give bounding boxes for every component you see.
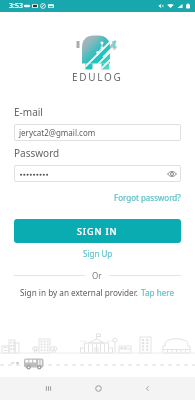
button[interactable]: Tap here (141, 287, 175, 298)
button[interactable]: Forgot password? (114, 192, 181, 203)
staticText: 3:53 (9, 1, 23, 11)
button[interactable]: jerycat2@gmail.com (14, 124, 181, 141)
button[interactable]: Home (81, 377, 115, 400)
button[interactable]: Show password (14, 165, 181, 182)
button[interactable]: Back (130, 377, 164, 400)
staticText: EDULOG (72, 70, 123, 84)
staticText: Tap here (141, 287, 175, 298)
button[interactable]: SIGN IN (14, 219, 181, 243)
staticText: E-mail (14, 105, 43, 119)
button[interactable]: Recent apps (31, 377, 65, 400)
staticText: Password (14, 146, 60, 160)
staticText: Or (92, 270, 102, 281)
staticText: Sign in by an external provider. (20, 287, 141, 298)
staticText: Forgot password? (114, 192, 181, 203)
staticText: Sign Up (83, 248, 113, 259)
button[interactable]: Show password (165, 167, 178, 180)
button[interactable]: Sign Up (83, 248, 113, 259)
staticText: SIGN IN (77, 225, 118, 237)
staticText: jerycat2@gmail.com (19, 127, 96, 138)
